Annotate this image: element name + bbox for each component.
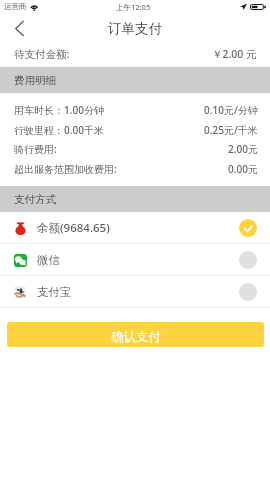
button[interactable]: 微信 <box>0 244 270 276</box>
staticText: 确认支付 <box>111 329 161 345</box>
staticText: 待支付金额: <box>14 47 70 61</box>
staticText: 运营商 <box>4 2 27 11</box>
staticText: 0.25元/千米 <box>204 123 258 137</box>
staticText: ￥2.00 元 <box>212 47 257 61</box>
staticText: 用车时长：1.00分钟 <box>14 103 104 117</box>
button[interactable]: 确认支付 <box>7 322 264 347</box>
staticText: 行驶里程：0.00千米 <box>14 123 104 137</box>
staticText: 支付宝 <box>37 285 72 299</box>
button[interactable]: 返回 <box>6 16 32 40</box>
staticText: 订单支付 <box>108 20 162 37</box>
staticText: 上午12:05 <box>116 2 151 12</box>
staticText: 超出服务范围加收费用: <box>14 162 117 176</box>
staticText: 0.10元/分钟 <box>204 103 258 117</box>
staticText: 费用明细 <box>14 74 56 87</box>
button[interactable]: 支付宝 <box>0 276 270 308</box>
staticText: 0.00元 <box>228 162 258 176</box>
staticText: 余额(9684.65) <box>37 220 110 236</box>
staticText: 2.00元 <box>228 142 258 156</box>
staticText: 支付方式 <box>14 193 56 206</box>
button[interactable]: 余额(9684.65) <box>0 212 270 244</box>
staticText: 微信 <box>37 253 60 267</box>
staticText: 骑行费用: <box>14 142 57 156</box>
